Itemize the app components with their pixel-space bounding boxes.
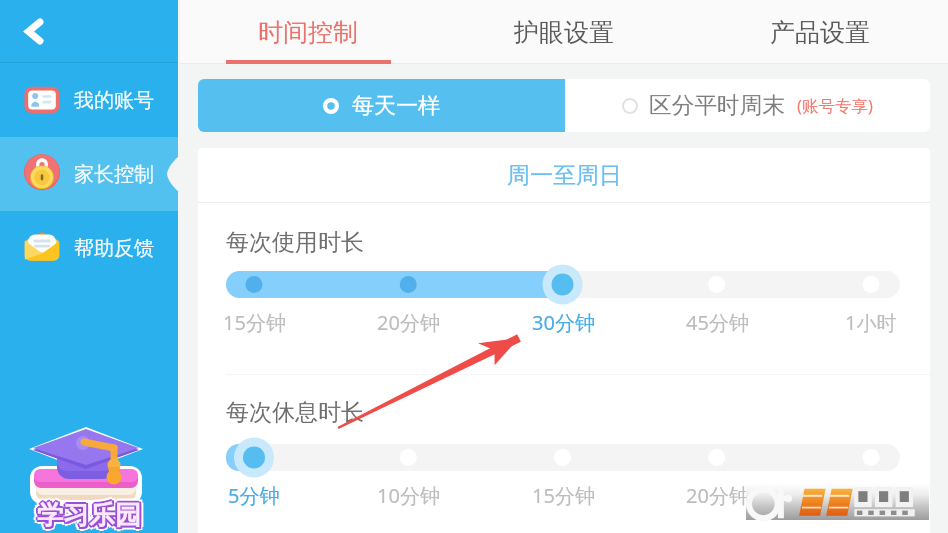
staticText: 学习乐园 bbox=[35, 499, 139, 532]
staticText: 时间控制 bbox=[258, 17, 358, 48]
staticText: 10分钟 bbox=[377, 482, 440, 508]
button[interactable]: 5分钟 bbox=[198, 482, 314, 508]
staticText: 每次休息时长 bbox=[226, 398, 364, 427]
staticText: 家长控制 bbox=[74, 162, 154, 187]
staticText: 学习乐园 bbox=[36, 501, 140, 533]
staticText: 每次使用时长 bbox=[226, 228, 364, 257]
button[interactable]: 15分钟 bbox=[198, 309, 314, 335]
staticText: 学习乐园 bbox=[33, 499, 137, 532]
staticText: 学习乐园 bbox=[34, 496, 138, 529]
staticText: 5分钟 bbox=[228, 482, 280, 508]
button[interactable]: 20分钟 bbox=[657, 482, 777, 508]
button[interactable]: 30分钟 bbox=[503, 309, 623, 335]
staticText: 产品设置 bbox=[770, 17, 870, 48]
button[interactable]: 时间控制 bbox=[180, 0, 436, 64]
button[interactable]: 家长控制 bbox=[0, 137, 178, 211]
button[interactable]: 1小时 bbox=[811, 309, 930, 335]
staticText: 学习乐园 bbox=[37, 499, 141, 532]
staticText: 15分钟 bbox=[532, 482, 595, 508]
staticText: 学习乐园 bbox=[40, 496, 144, 529]
button[interactable]: 帮助反馈 bbox=[0, 211, 178, 285]
staticText: 学习乐园 bbox=[37, 503, 141, 533]
staticText: 20分钟 bbox=[686, 482, 749, 508]
staticText: 学习乐园 bbox=[39, 501, 143, 533]
staticText: 45分钟 bbox=[686, 309, 749, 335]
staticText: 帮助反馈 bbox=[74, 236, 154, 261]
staticText: 学习乐园 bbox=[37, 501, 141, 533]
button[interactable]: 20分钟 bbox=[348, 309, 468, 335]
staticText: 每天一样 bbox=[352, 92, 440, 120]
staticText: 15分钟 bbox=[223, 309, 286, 335]
staticText: 20分钟 bbox=[377, 309, 440, 335]
button[interactable]: 45分钟 bbox=[657, 309, 777, 335]
button[interactable]: 区分平时周末 bbox=[565, 79, 930, 132]
button[interactable]: 我的账号 bbox=[0, 63, 178, 137]
staticText: 学习乐园 bbox=[40, 502, 144, 533]
button[interactable]: Back bbox=[0, 0, 178, 62]
staticText: 周一至周日 bbox=[507, 161, 622, 190]
button[interactable]: 15分钟 bbox=[503, 482, 623, 508]
button[interactable]: 10分钟 bbox=[348, 482, 468, 508]
staticText: 学习乐园 bbox=[34, 502, 138, 533]
staticText: 1小时 bbox=[845, 309, 897, 335]
button[interactable]: 护眼设置 bbox=[436, 0, 692, 64]
button[interactable]: 产品设置 bbox=[692, 0, 948, 64]
staticText: 护眼设置 bbox=[514, 17, 614, 48]
button[interactable]: 学习乐园 bbox=[0, 415, 178, 533]
staticText: 学习乐园 bbox=[37, 495, 141, 528]
staticText: 30分钟 bbox=[532, 309, 595, 335]
staticText: 我的账号 bbox=[74, 88, 154, 113]
button[interactable]: 30分钟 bbox=[811, 482, 930, 508]
staticText: 学习乐园 bbox=[37, 497, 141, 530]
button[interactable]: 每天一样 bbox=[198, 79, 565, 132]
staticText: 学习乐园 bbox=[39, 498, 143, 531]
staticText: 学习乐园 bbox=[41, 499, 145, 532]
staticText: (账号专享) bbox=[797, 94, 873, 117]
staticText: 区分平时周末 bbox=[649, 91, 786, 120]
staticText: 学习乐园 bbox=[36, 498, 140, 531]
staticText: 学习乐园 bbox=[39, 499, 143, 532]
staticText: 30分钟 bbox=[840, 482, 903, 508]
